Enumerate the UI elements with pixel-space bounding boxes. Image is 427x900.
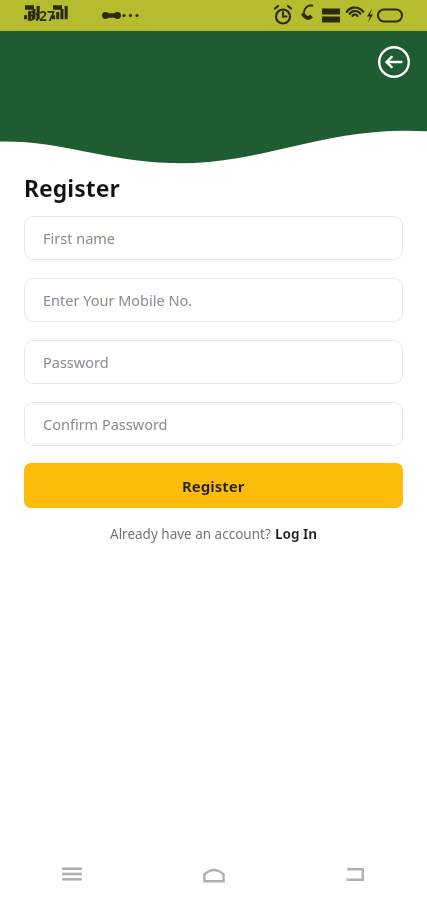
staticText: Log In	[275, 525, 318, 543]
button[interactable]: Recents	[0, 848, 143, 900]
staticText: Confirm Password	[43, 414, 168, 434]
button[interactable]: Home	[143, 848, 285, 900]
staticText: Already have an account?	[110, 525, 275, 543]
button[interactable]: Enter Your Mobile No.	[24, 278, 403, 322]
button[interactable]: Back	[377, 45, 411, 79]
button[interactable]: First name	[24, 216, 403, 260]
button[interactable]: Log In	[275, 525, 318, 543]
staticText: First name	[43, 228, 116, 248]
staticText: Enter Your Mobile No.	[43, 290, 193, 310]
button[interactable]: Register	[24, 463, 403, 508]
button[interactable]: Confirm Password	[24, 402, 403, 446]
staticText: Register	[24, 172, 120, 203]
staticText: Register	[182, 476, 245, 496]
button[interactable]: Back	[285, 848, 427, 900]
button[interactable]: Password	[24, 340, 403, 384]
staticText: 5:27	[27, 6, 55, 25]
staticText: Password	[43, 352, 109, 372]
